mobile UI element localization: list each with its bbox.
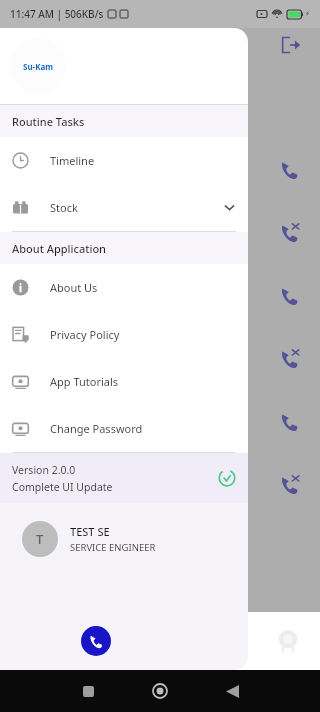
button[interactable]: Stock: [0, 184, 248, 231]
button[interactable]: Badges: [256, 612, 320, 670]
staticText: Su-Kam: [23, 61, 54, 72]
staticText: About Us: [50, 280, 98, 295]
staticText: Version 2.0.0: [12, 463, 76, 477]
button[interactable]: Logout: [280, 34, 302, 56]
button[interactable]: Locations: [192, 612, 256, 670]
button[interactable]: Timeline: [0, 137, 248, 184]
button[interactable]: Home: [138, 670, 182, 712]
button[interactable]: Privacy Policy: [0, 311, 248, 358]
button[interactable]: App Tutorials: [0, 358, 248, 405]
button[interactable]: T: [0, 503, 248, 670]
button[interactable]: Calls: [81, 626, 111, 656]
staticText: Privacy Policy: [50, 327, 120, 342]
button[interactable]: Calls: [64, 612, 128, 670]
button[interactable]: About Us: [0, 264, 248, 311]
staticText: TEST SE: [70, 524, 110, 539]
staticText: About Application: [12, 241, 106, 256]
staticText: Complete UI Update: [12, 480, 113, 494]
staticText: Stock: [50, 200, 78, 215]
staticText: Timeline: [50, 153, 95, 168]
staticText: Routine Tasks: [12, 114, 85, 129]
staticText: ⚡: [305, 10, 310, 18]
button[interactable]: Change Password: [0, 405, 248, 452]
staticText: App Tutorials: [50, 374, 119, 389]
button[interactable]: Recents: [66, 670, 110, 712]
staticText: 11:47 AM | 506KB/s: [10, 7, 104, 21]
staticText: SERVICE ENGINEER: [70, 541, 156, 554]
staticText: Change Password: [50, 421, 143, 436]
button[interactable]: Version 2.0.0: [0, 453, 248, 503]
button[interactable]: Back: [210, 670, 254, 712]
staticText: T: [36, 530, 44, 548]
